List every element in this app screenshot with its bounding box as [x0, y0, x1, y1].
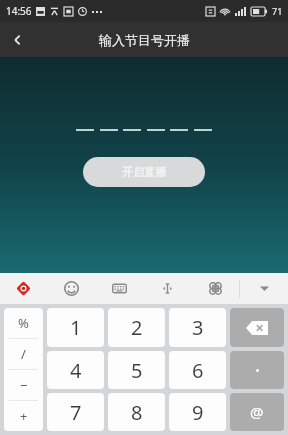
staticText: 3	[192, 314, 204, 341]
button[interactable]: 2	[108, 308, 165, 347]
staticText: 4	[70, 357, 82, 384]
staticText: 6	[192, 357, 204, 384]
staticText: +	[20, 407, 28, 425]
staticText: 8	[131, 399, 143, 426]
staticText: 开启直播	[122, 165, 166, 179]
button[interactable]: Emoji	[47, 273, 95, 304]
button[interactable]: Keyboard	[95, 273, 143, 304]
button[interactable]: 5	[108, 351, 165, 389]
button[interactable]: /	[4, 339, 43, 369]
button[interactable]: +	[4, 401, 43, 431]
button[interactable]: 4	[47, 351, 104, 389]
button[interactable]: Symbols	[191, 273, 239, 304]
button[interactable]: 开启直播	[83, 157, 205, 187]
staticText: 7	[70, 399, 82, 426]
button[interactable]: %	[4, 308, 43, 338]
button[interactable]: Backspace	[230, 308, 284, 347]
staticText: 输入节目号开播	[99, 32, 190, 48]
button[interactable]: Hide keyboard	[240, 273, 288, 304]
button[interactable]: Period	[230, 351, 284, 389]
staticText: −	[20, 376, 28, 394]
button[interactable]: Sogou input	[0, 273, 47, 304]
button[interactable]: Back	[0, 22, 35, 57]
button[interactable]: 1	[47, 308, 104, 347]
staticText: 71	[272, 5, 283, 17]
button[interactable]: At sign	[230, 393, 284, 431]
button[interactable]: Cursor	[143, 273, 191, 304]
staticText: 1	[70, 314, 82, 341]
button[interactable]: 7	[47, 393, 104, 431]
staticText: 14:56	[6, 4, 32, 18]
staticText: @	[250, 402, 264, 422]
button[interactable]: −	[4, 370, 43, 400]
button[interactable]: 9	[169, 393, 226, 431]
button[interactable]: 3	[169, 308, 226, 347]
staticText: /	[21, 345, 26, 363]
button[interactable]: 8	[108, 393, 165, 431]
staticText: 5	[131, 357, 143, 384]
button[interactable]: 6	[169, 351, 226, 389]
staticText: %	[18, 314, 29, 332]
staticText: 2	[131, 314, 143, 341]
staticText: 9	[192, 399, 204, 426]
